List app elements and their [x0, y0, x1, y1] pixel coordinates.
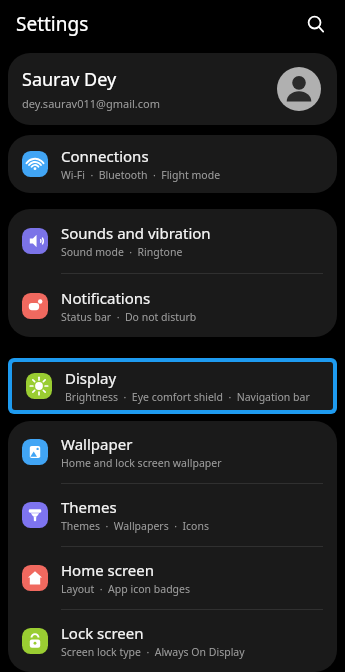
staticText: Home and lock screen wallpaper [61, 456, 222, 470]
button[interactable]: Wallpaper [8, 421, 337, 483]
button[interactable]: Notifications [8, 274, 337, 337]
staticText: Lock screen [61, 623, 144, 643]
staticText: Status bar · Do not disturb [61, 310, 197, 324]
staticText: Home screen [61, 560, 155, 580]
staticText: Themes · Wallpapers · Icons [61, 519, 209, 533]
button[interactable]: Home screen [8, 547, 337, 609]
button[interactable]: Sounds and vibration [8, 209, 337, 273]
staticText: Sound mode · Ringtone [61, 245, 183, 259]
staticText: Themes [61, 497, 117, 517]
staticText: Brightness · Eye comfort shield · Naviga… [65, 390, 310, 404]
button[interactable]: Display [12, 362, 333, 410]
button[interactable]: Lock screen [8, 610, 337, 672]
staticText: Notifications [61, 288, 151, 308]
button[interactable]: Display [12, 362, 333, 410]
staticText: Saurav Dey [22, 67, 117, 92]
button[interactable]: Themes [8, 484, 337, 546]
staticText: Wallpaper [61, 434, 133, 454]
staticText: Connections [61, 146, 149, 166]
staticText: Display [65, 368, 117, 388]
staticText: Wi-Fi · Bluetooth · Flight mode [61, 168, 221, 182]
staticText: Screen lock type · Always On Display [61, 645, 245, 659]
staticText: Layout · App icon badges [61, 582, 191, 596]
button[interactable]: Search [299, 7, 333, 41]
staticText: dey.saurav011@gmail.com [22, 96, 161, 111]
staticText: Sounds and vibration [61, 223, 211, 243]
button[interactable]: Connections [8, 135, 337, 193]
button[interactable]: Saurav Dey [8, 53, 337, 125]
staticText: Settings [16, 11, 89, 37]
